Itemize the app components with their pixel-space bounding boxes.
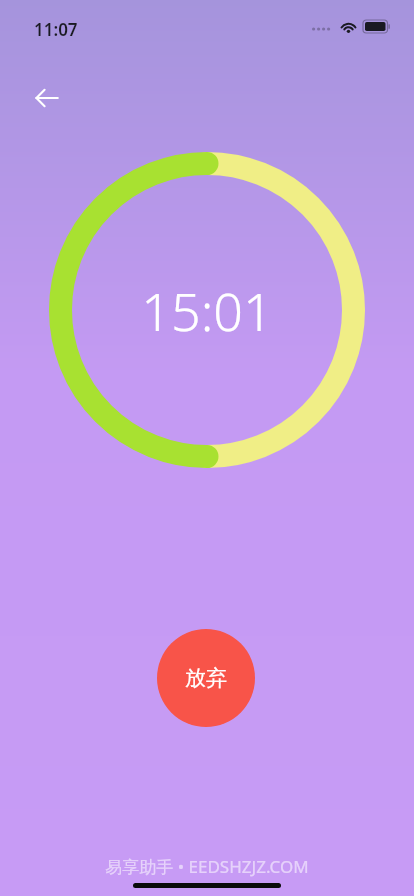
button[interactable]: Back xyxy=(24,75,70,121)
button[interactable]: 放弃 xyxy=(157,629,255,727)
staticText: 易享助手 • EEDSHZJZ.COM xyxy=(105,855,309,878)
staticText: 放弃 xyxy=(185,665,227,691)
staticText: 11:07 xyxy=(34,18,78,41)
staticText: 15:01 xyxy=(141,275,273,346)
